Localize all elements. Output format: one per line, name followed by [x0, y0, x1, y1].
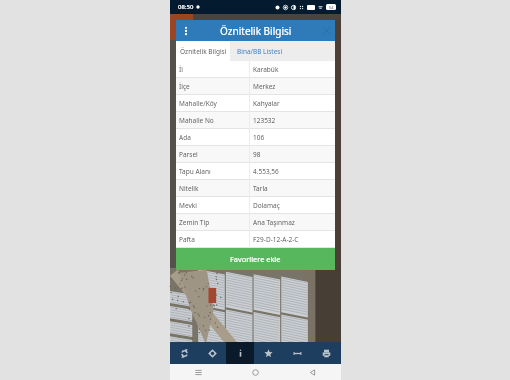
staticText: Ana Taşınmaz: [253, 218, 295, 227]
button[interactable]: Home: [227, 364, 284, 380]
button[interactable]: Print: [312, 342, 341, 364]
staticText: Öznitelik Bilgisi: [180, 47, 227, 56]
staticText: Tapu Alanı: [179, 167, 253, 176]
staticText: Mahalle/Köy: [179, 99, 253, 108]
button[interactable]: Favorilere ekle: [176, 248, 335, 270]
button[interactable]: Zemin Tip: [176, 214, 335, 230]
button[interactable]: Pafta: [176, 231, 335, 247]
button[interactable]: Refresh: [170, 342, 198, 364]
button[interactable]: Mahalle/Köy: [176, 95, 335, 111]
staticText: Merkez: [253, 82, 276, 91]
staticText: Pafta: [179, 235, 253, 244]
staticText: Tarla: [253, 184, 268, 193]
staticText: 54: [329, 5, 334, 10]
button[interactable]: Bina/BB Listesi: [230, 41, 335, 61]
staticText: Öznitelik Bilgisi: [220, 24, 292, 38]
staticText: Kahyalar: [253, 99, 280, 108]
staticText: Nitelik: [179, 184, 253, 193]
staticText: 08:50: [178, 3, 194, 11]
staticText: 98: [253, 150, 261, 159]
staticText: F29-D-12-A-2-C: [253, 235, 299, 244]
staticText: İl: [179, 65, 253, 74]
staticText: Karabük: [253, 65, 279, 74]
staticText: 4.553,56: [253, 167, 279, 176]
button[interactable]: Measure: [283, 342, 312, 364]
button[interactable]: Mahalle No: [176, 112, 335, 128]
button[interactable]: İlçe: [176, 78, 335, 94]
staticText: 123532: [253, 116, 276, 125]
staticText: Favorilere ekle: [230, 254, 281, 264]
button[interactable]: Close: [319, 20, 335, 41]
staticText: Ada: [179, 133, 253, 142]
button[interactable]: Parsel: [176, 146, 335, 162]
button[interactable]: Locate: [198, 342, 226, 364]
button[interactable]: Nitelik: [176, 180, 335, 196]
button[interactable]: İl: [176, 61, 335, 77]
button[interactable]: More options: [176, 20, 195, 41]
button[interactable]: Recents: [170, 364, 227, 380]
button[interactable]: Mevki: [176, 197, 335, 213]
staticText: Mahalle No: [179, 116, 253, 125]
staticText: Zemin Tip: [179, 218, 253, 227]
button[interactable]: Info: [226, 342, 254, 364]
staticText: İlçe: [179, 82, 253, 91]
staticText: Mevki: [179, 201, 253, 210]
staticText: Parsel: [179, 150, 253, 159]
button[interactable]: Öznitelik Bilgisi: [176, 41, 230, 61]
button[interactable]: Ada: [176, 129, 335, 145]
button[interactable]: Back: [284, 364, 341, 380]
staticText: Dolamaç: [253, 201, 280, 210]
staticText: 106: [253, 133, 265, 142]
button[interactable]: Tapu Alanı: [176, 163, 335, 179]
button[interactable]: Favorites: [254, 342, 283, 364]
staticText: Bina/BB Listesi: [237, 47, 283, 56]
